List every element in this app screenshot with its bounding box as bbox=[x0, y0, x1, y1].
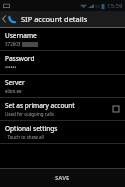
button[interactable]: Username bbox=[0, 28, 125, 50]
staticText: Password bbox=[5, 54, 35, 63]
button[interactable]: Server bbox=[0, 75, 125, 97]
staticText: 372603 bbox=[5, 41, 21, 47]
staticText: SIP account details bbox=[21, 14, 88, 24]
staticText: Server bbox=[5, 78, 25, 87]
staticText: Optional settings bbox=[5, 124, 58, 133]
staticText: •••••• bbox=[5, 64, 17, 71]
staticText: 93 bbox=[95, 4, 100, 9]
button[interactable]: Set as primary account bbox=[0, 98, 125, 120]
staticText: SAVE bbox=[55, 174, 70, 182]
staticText: 15:59 bbox=[107, 2, 123, 10]
button[interactable]: Optional settings bbox=[0, 121, 125, 143]
staticText: Username bbox=[5, 31, 37, 40]
staticText: Set as primary account bbox=[5, 101, 75, 110]
staticText: Used for outgoing calls bbox=[5, 111, 54, 117]
button[interactable]: Set as primary account checkbox bbox=[112, 105, 120, 113]
button[interactable]: SAVE bbox=[47, 171, 78, 185]
staticText: · Touch to show all bbox=[5, 134, 44, 140]
button[interactable]: Navigate up bbox=[0, 11, 18, 27]
staticText: elion.ee bbox=[5, 88, 22, 94]
button[interactable]: Password bbox=[0, 51, 125, 74]
